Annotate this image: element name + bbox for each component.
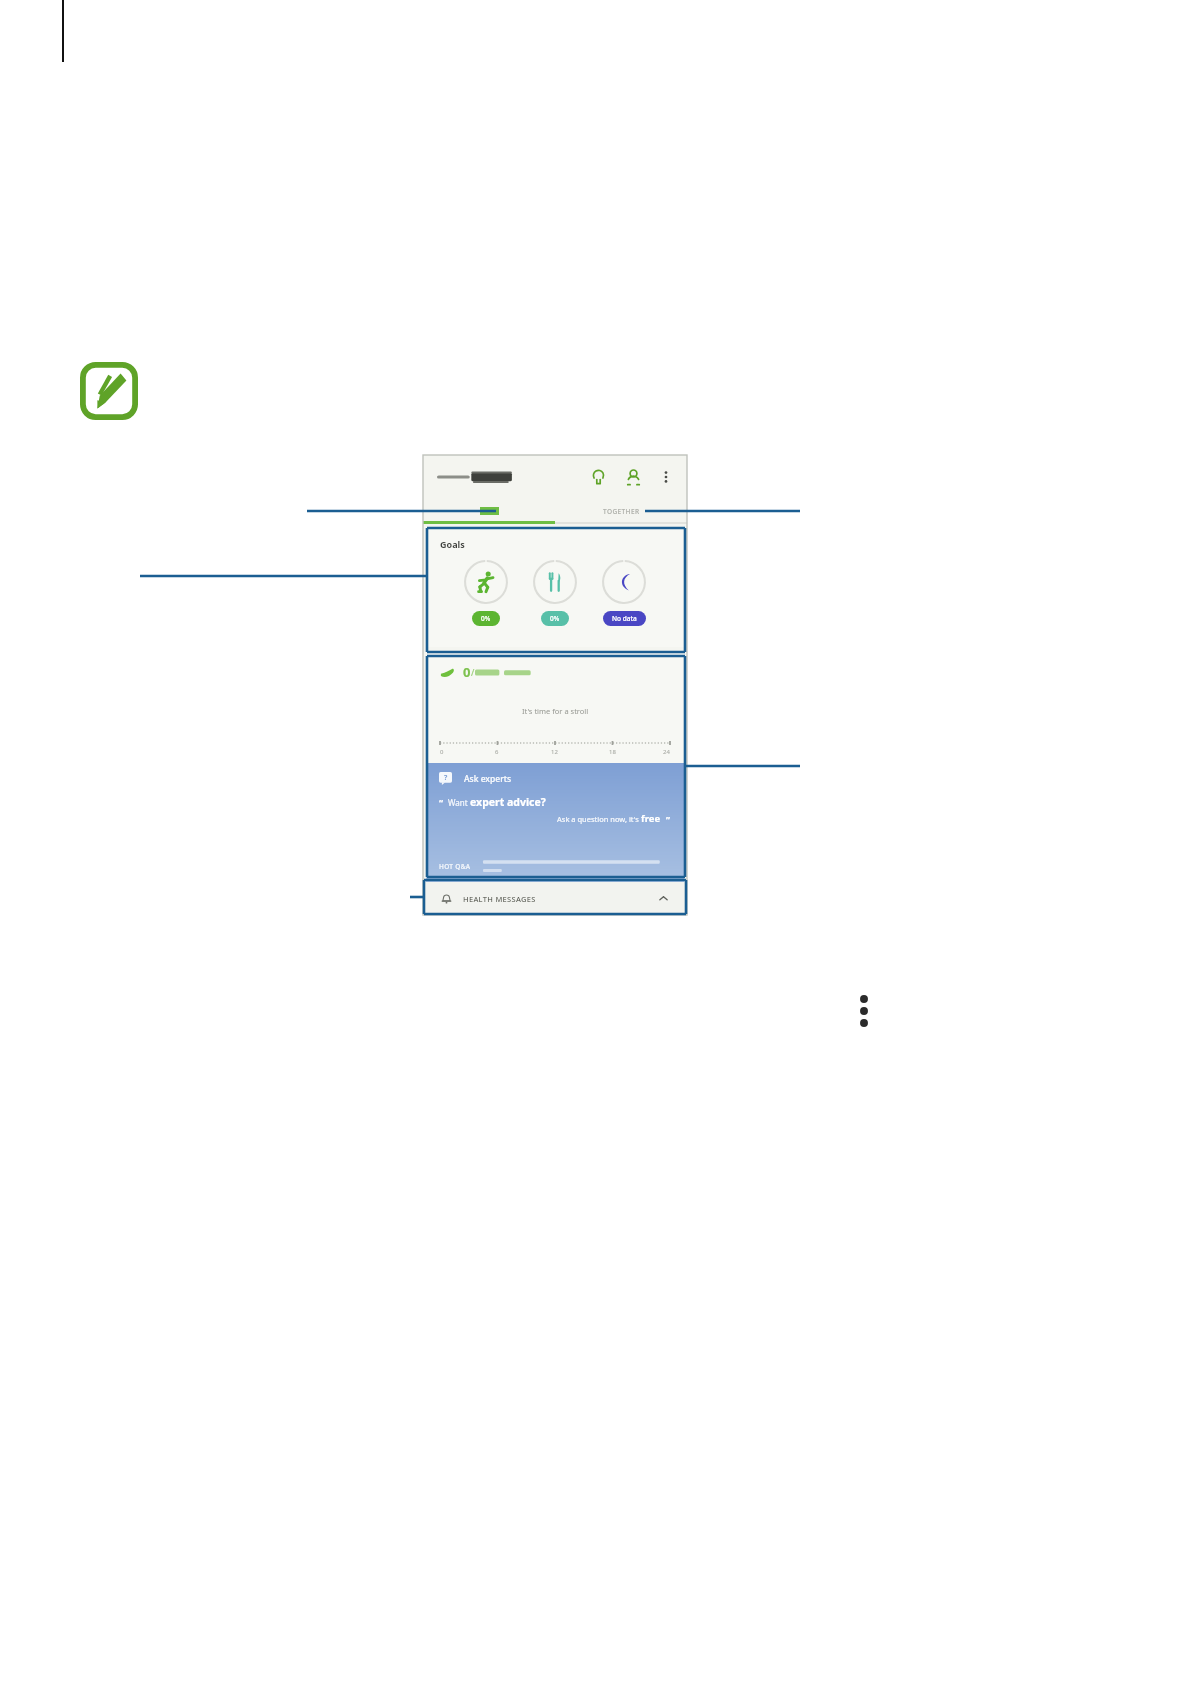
staticText: It's time for a stroll: [522, 706, 589, 716]
button[interactable]: [423, 499, 555, 524]
staticText: No data: [612, 614, 637, 623]
staticText: expert advice?: [470, 795, 546, 809]
staticText: ?: [444, 773, 448, 783]
staticText: ”: [666, 813, 671, 825]
staticText: 18: [609, 748, 616, 756]
button[interactable]: 0: [426, 651, 684, 763]
staticText: 0: [440, 748, 444, 756]
staticText: 12: [551, 748, 558, 756]
button[interactable]: Profile: [622, 466, 644, 488]
staticText: “: [439, 796, 444, 808]
staticText: HEALTH MESSAGES: [463, 894, 536, 904]
button[interactable]: ?: [426, 763, 684, 882]
button[interactable]: No data: [601, 559, 647, 626]
staticText: Goals: [440, 538, 465, 550]
staticText: Want: [448, 797, 470, 808]
staticText: 6: [495, 748, 499, 756]
staticText: 0%: [481, 614, 491, 623]
button[interactable]: Goals: [426, 527, 684, 647]
staticText: Ask a question now, it's: [557, 814, 641, 824]
button[interactable]: More options: [655, 466, 677, 488]
staticText: HOT Q&A: [439, 862, 471, 871]
button[interactable]: 0%: [532, 559, 578, 626]
staticText: free: [641, 812, 661, 825]
staticText: 24: [663, 748, 670, 756]
staticText: /: [471, 666, 475, 678]
staticText: Ask experts: [464, 773, 512, 785]
staticText: TOGETHER: [603, 507, 640, 516]
button[interactable]: 0%: [463, 559, 509, 626]
other: More options: [855, 993, 873, 1029]
button[interactable]: HEALTH MESSAGES: [426, 882, 684, 915]
staticText: 0: [463, 663, 471, 681]
button[interactable]: TOGETHER: [555, 499, 687, 524]
button[interactable]: Tips: [587, 466, 609, 488]
staticText: 0%: [550, 614, 560, 623]
